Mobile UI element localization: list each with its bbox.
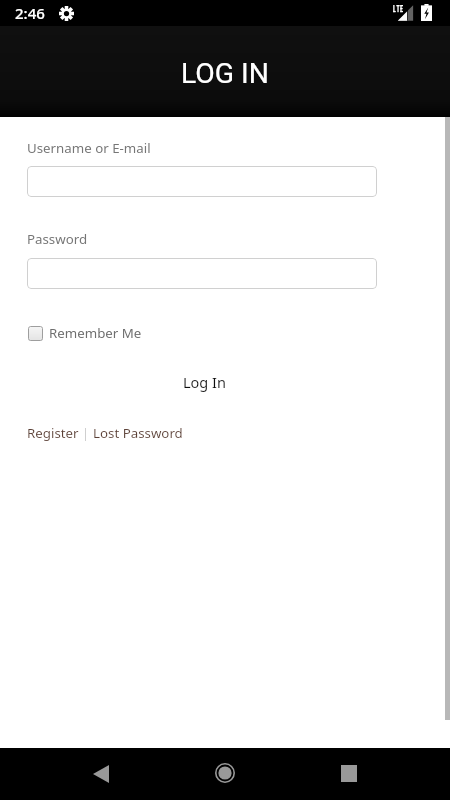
button[interactable] <box>27 166 377 197</box>
staticText: Register <box>27 424 79 442</box>
button[interactable]: Back <box>75 753 123 800</box>
button[interactable] <box>27 258 377 289</box>
button[interactable]: Home <box>201 753 249 800</box>
button[interactable]: Remember Me <box>28 324 142 342</box>
staticText: LOG IN <box>181 57 269 90</box>
staticText: Lost Password <box>93 424 183 442</box>
button[interactable]: Lost Password <box>93 424 183 442</box>
button[interactable]: Register <box>27 424 79 442</box>
staticText: Username or E-mail <box>27 139 151 157</box>
staticText: Password <box>27 230 88 248</box>
staticText: 2:46 <box>15 3 45 23</box>
button[interactable]: Recent apps <box>325 753 373 800</box>
staticText: Log In <box>183 372 226 392</box>
staticText: Remember Me <box>49 324 142 342</box>
button[interactable]: Log In <box>168 368 241 396</box>
